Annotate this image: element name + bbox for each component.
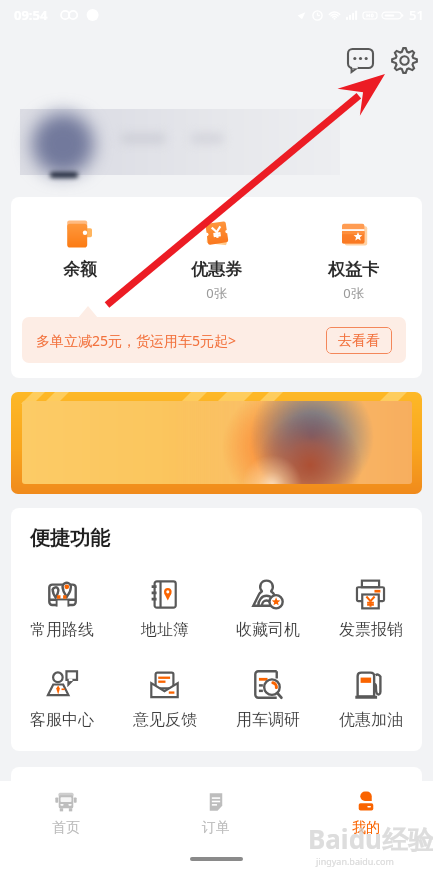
button[interactable]: 优惠券 (148, 218, 285, 302)
button[interactable]: Settings (384, 40, 424, 80)
staticText: 用车调研 (236, 710, 300, 730)
button[interactable]: 去看看 (326, 327, 392, 354)
button[interactable]: Messages (340, 40, 380, 80)
button[interactable]: 余额 (11, 218, 148, 280)
button[interactable]: 我的 (326, 789, 406, 837)
staticText: 0张 (343, 284, 364, 302)
staticText: 常用路线 (30, 620, 94, 640)
staticText: 权益卡 (328, 259, 379, 280)
staticText: 地址簿 (141, 620, 189, 640)
button[interactable]: 订单 (176, 789, 256, 837)
button[interactable]: 客服中心 (11, 668, 113, 730)
staticText: 订单 (202, 819, 230, 837)
staticText: 多单立减25元，货运用车5元起> (36, 331, 237, 350)
staticText: 意见反馈 (133, 710, 197, 730)
staticText: 0张 (206, 284, 227, 302)
button[interactable]: 优惠加油 (319, 668, 422, 730)
staticText: 收藏司机 (236, 620, 300, 640)
staticText: 51 (409, 6, 424, 24)
staticText: jingyan.baidu.com (316, 855, 394, 867)
staticText: 首页 (52, 819, 80, 837)
staticText: Baidu经验 (308, 821, 433, 857)
staticText: 我的 (352, 819, 380, 837)
button[interactable]: 用车调研 (216, 668, 319, 730)
staticText: 优惠券 (191, 259, 242, 280)
button[interactable]: 首页 (26, 789, 106, 837)
button[interactable]: 发票报销 (319, 578, 422, 640)
staticText: 09:54 (14, 6, 48, 24)
button[interactable]: 多单立减25元，货运用车5元起> (22, 317, 406, 363)
button[interactable]: 地址簿 (113, 578, 216, 640)
button[interactable] (11, 392, 422, 494)
staticText: 发票报销 (339, 620, 403, 640)
staticText: 客服中心 (30, 710, 94, 730)
staticText: 优惠加油 (339, 710, 403, 730)
button[interactable]: 常用路线 (11, 578, 113, 640)
staticText: 去看看 (338, 332, 380, 350)
staticText: 余额 (63, 259, 97, 280)
staticText: 便捷功能 (30, 526, 110, 551)
button[interactable]: 收藏司机 (216, 578, 319, 640)
button[interactable]: 权益卡 (285, 218, 422, 302)
button[interactable]: 意见反馈 (113, 668, 216, 730)
